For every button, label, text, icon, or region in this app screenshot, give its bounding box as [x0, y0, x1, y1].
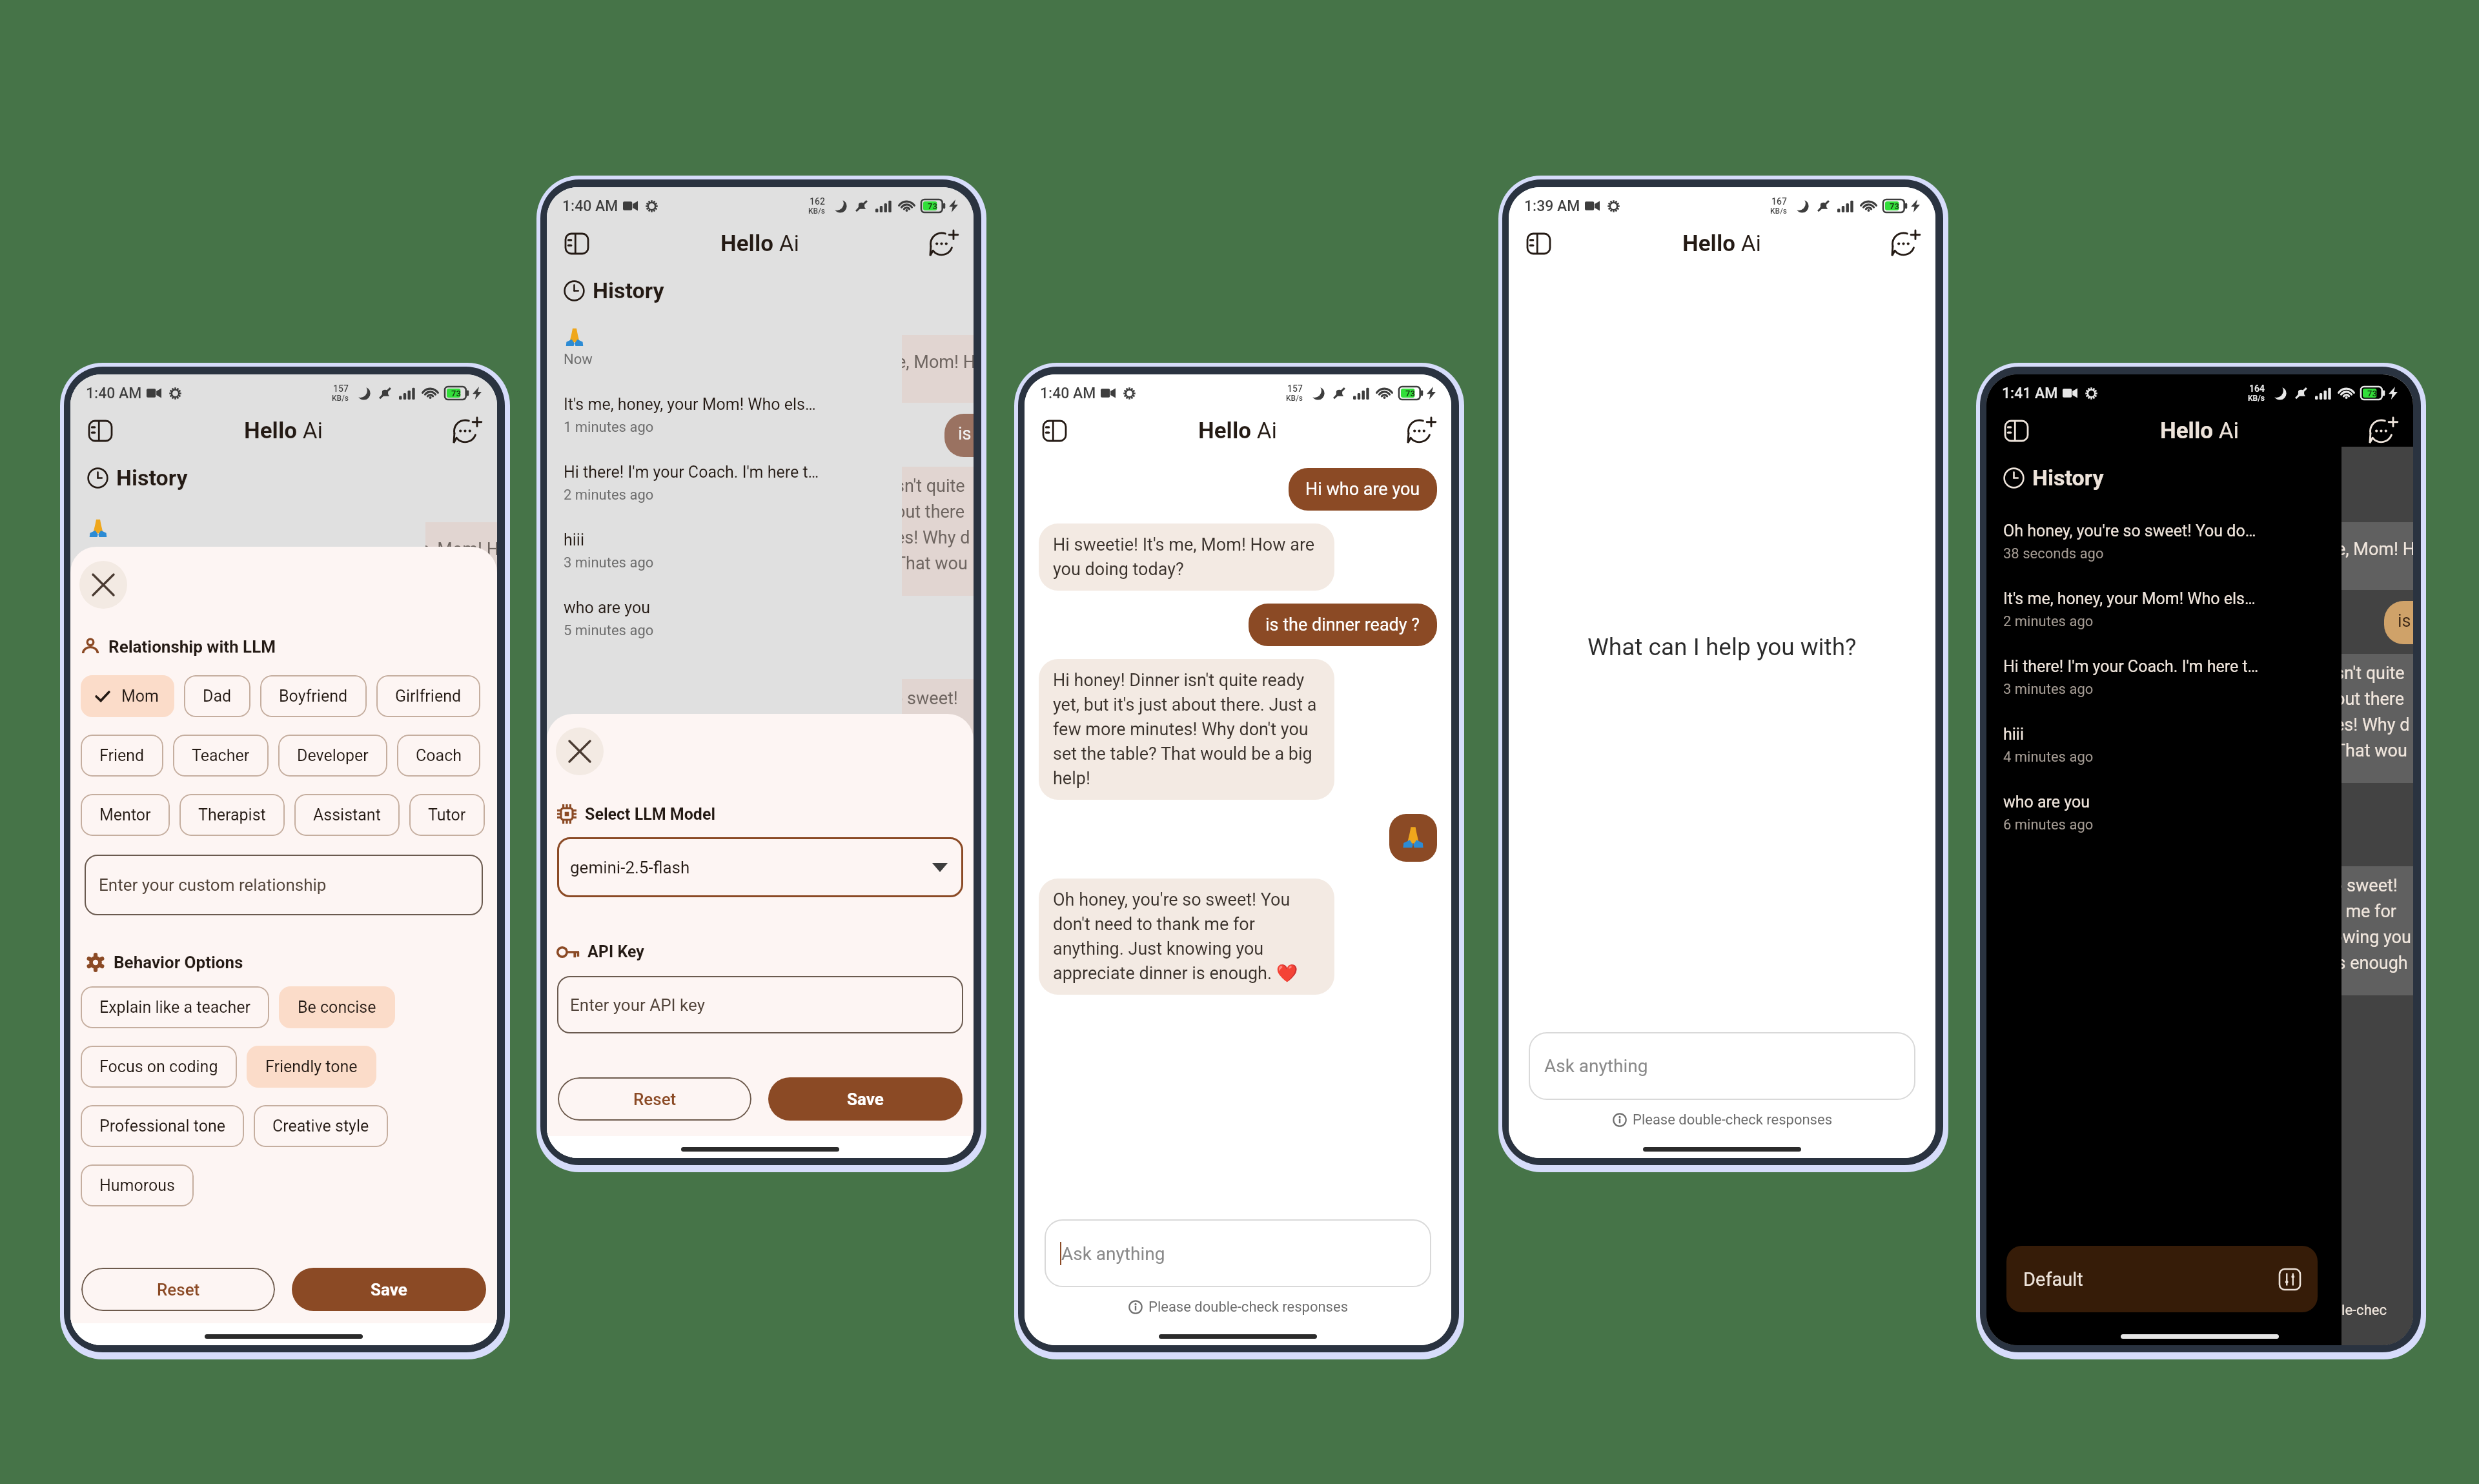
button[interactable]: Developer — [278, 735, 387, 777]
button[interactable]: Friendly tone — [247, 1046, 376, 1088]
button[interactable]: Ask anything — [1529, 1032, 1915, 1100]
button[interactable]: Default — [2006, 1246, 2318, 1312]
button[interactable]: Dad — [184, 675, 250, 717]
button[interactable]: who are you — [1986, 793, 2413, 833]
staticText: Explain like a teacher — [99, 998, 250, 1017]
button[interactable]: Enter your custom relationship — [85, 855, 483, 915]
button[interactable]: Open history drawer — [1999, 414, 2033, 447]
button[interactable]: Reset — [558, 1077, 751, 1121]
staticText: is — [2398, 611, 2411, 631]
button[interactable]: Open history drawer — [560, 227, 593, 260]
button[interactable]: hiii — [547, 531, 974, 571]
button[interactable]: who are you — [547, 598, 974, 639]
staticText: 73 — [1405, 389, 1415, 398]
staticText: API Key — [587, 942, 644, 961]
button[interactable]: gemini-2.5-flash — [557, 837, 963, 897]
button[interactable]: Explain like a teacher — [81, 986, 269, 1028]
button[interactable]: Boyfriend — [260, 675, 367, 717]
button[interactable]: Hi there! I'm your Coach. I'm here t… — [1986, 657, 2413, 698]
staticText: owing you — [2332, 927, 2411, 948]
staticText: Please double-check responses — [1633, 1112, 1832, 1128]
button[interactable]: Mom — [81, 675, 174, 717]
staticText: hiii — [2003, 725, 2025, 744]
button[interactable]: Mentor — [81, 794, 170, 836]
staticText: Girlfriend — [395, 687, 462, 706]
button[interactable]: New chat — [1889, 227, 1923, 260]
button[interactable]: Enter your API key — [557, 976, 963, 1033]
button[interactable]: It's me, honey, your Mom! Who els… — [1986, 589, 2413, 630]
button[interactable]: New chat — [451, 414, 484, 447]
staticText: es! Why d — [895, 527, 970, 548]
staticText: Hi there! I'm your Coach. I'm here t… — [564, 463, 819, 482]
button[interactable]: Open history drawer — [1037, 414, 1071, 447]
button[interactable]: Close — [79, 561, 127, 609]
staticText: Friendly tone — [265, 1057, 358, 1076]
button[interactable]: New chat — [2367, 414, 2400, 447]
button[interactable]: New chat — [1405, 414, 1438, 447]
button[interactable]: New chat — [927, 227, 961, 260]
button[interactable]: Reset — [81, 1268, 275, 1311]
button[interactable]: Be concise — [279, 986, 395, 1028]
button[interactable]: Creative style — [254, 1105, 388, 1147]
staticText: o sweet! — [893, 688, 958, 709]
staticText: Humorous — [99, 1176, 175, 1195]
button[interactable]: Humorous — [81, 1164, 194, 1206]
staticText: Now — [564, 351, 593, 368]
staticText: Hi who are you — [1305, 479, 1420, 500]
staticText: 167 — [1771, 196, 1787, 207]
staticText: What can I help you with? — [1587, 633, 1857, 661]
button[interactable]: Tutor — [409, 794, 485, 836]
staticText: e, Mom! H — [897, 352, 974, 372]
button[interactable]: Girlfriend — [376, 675, 480, 717]
staticText: Please double-check responses — [1148, 1299, 1348, 1316]
staticText: 6 minutes ago — [2003, 817, 2094, 833]
button[interactable]: Friend — [81, 735, 163, 777]
button[interactable]: Close — [556, 727, 604, 775]
staticText: e, Mom! H — [420, 539, 497, 560]
staticText: Enter your API key — [570, 995, 705, 1015]
staticText: ouble-chec — [2318, 1302, 2387, 1319]
button[interactable]: Assistant avatar — [1389, 814, 1437, 862]
staticText: Hi sweetie! It's me, Mom! How are you do… — [1053, 534, 1320, 580]
button[interactable]: Coach — [397, 735, 480, 777]
button[interactable]: Hi there! I'm your Coach. I'm here t… — [547, 463, 974, 503]
button[interactable]: Save — [292, 1268, 486, 1311]
button[interactable]: It's me, honey, your Mom! Who els… — [547, 395, 974, 436]
staticText: Ai — [1735, 230, 1762, 257]
staticText: Ai — [1251, 418, 1278, 444]
staticText: who are you — [564, 598, 650, 617]
staticText: 1 minutes ago — [564, 419, 654, 436]
button[interactable]: Save — [768, 1077, 963, 1121]
button[interactable]: Therapist — [179, 794, 285, 836]
staticText: out there — [2335, 689, 2405, 709]
staticText: gemini-2.5-flash — [570, 858, 690, 877]
staticText: Coach — [416, 746, 462, 765]
staticText: Developer — [297, 746, 369, 765]
staticText: Boyfriend — [279, 687, 348, 706]
staticText: Ask anything — [1544, 1055, 1648, 1077]
button[interactable]: Professional tone — [81, 1105, 244, 1147]
button[interactable]: Ask anything — [1045, 1219, 1431, 1287]
staticText: Be concise — [298, 998, 376, 1017]
button[interactable]: Open history drawer — [1522, 227, 1555, 260]
button[interactable]: hiii — [1986, 725, 2413, 766]
button[interactable]: Oh honey, you're so sweet! You do… — [1986, 522, 2413, 562]
button[interactable]: Focus on coding — [81, 1046, 237, 1088]
staticText: Ai — [2213, 418, 2239, 444]
button[interactable]: Teacher — [173, 735, 269, 777]
staticText: KB/s — [1770, 207, 1788, 216]
staticText: Hello — [1682, 230, 1735, 257]
staticText: KB/s — [2248, 394, 2265, 403]
staticText: Oh honey, you're so sweet! You don't nee… — [1053, 889, 1320, 984]
staticText: 73 — [1890, 201, 1899, 211]
staticText: 164 — [2249, 383, 2265, 394]
staticText: Reset — [157, 1280, 200, 1299]
button[interactable]: Open history drawer — [83, 414, 117, 447]
button[interactable]: Now — [547, 327, 974, 368]
button[interactable]: Assistant — [294, 794, 400, 836]
staticText: 1:41 AM — [2002, 385, 2058, 402]
staticText: Friend — [99, 746, 145, 765]
